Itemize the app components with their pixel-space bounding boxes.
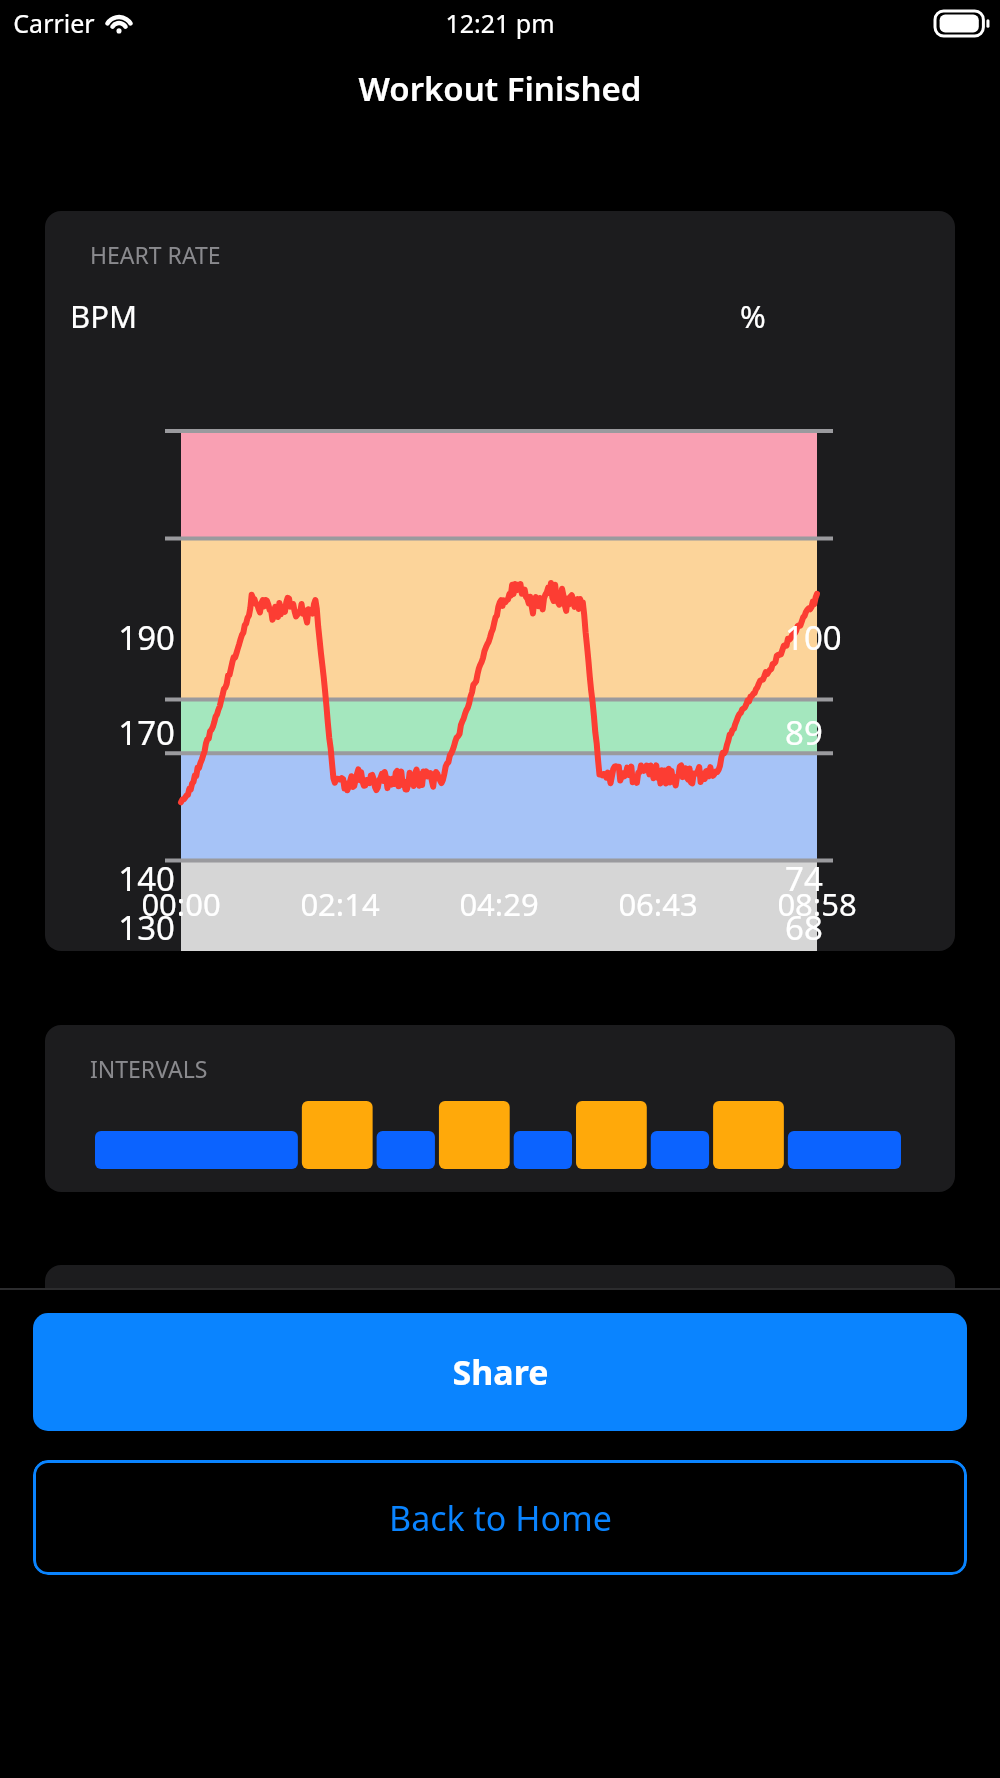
staticText: Carrier <box>13 6 95 40</box>
button[interactable]: Share <box>33 1313 967 1431</box>
staticText: BPM <box>70 295 138 337</box>
staticText: 100 <box>785 615 915 660</box>
staticText: 190 <box>45 615 175 660</box>
staticText: Share <box>452 1349 549 1395</box>
button[interactable]: Back to Home <box>33 1460 967 1575</box>
staticText: 140 <box>45 856 175 901</box>
staticText: 170 <box>45 710 175 755</box>
staticText: Workout Finished <box>358 66 642 111</box>
staticText: 74 <box>785 856 915 901</box>
staticText: HEART RATE <box>90 239 221 270</box>
staticText: INTERVALS <box>90 1053 208 1084</box>
staticText: 08:58 <box>742 883 892 925</box>
staticText: 68 <box>785 905 915 950</box>
staticText: 00:00 <box>106 883 256 925</box>
staticText: % <box>740 295 766 337</box>
staticText: Back to Home <box>389 1495 612 1541</box>
staticText: 06:43 <box>583 883 733 925</box>
staticText: 02:14 <box>265 883 415 925</box>
staticText: 12:21 pm <box>445 6 555 40</box>
staticText: 04:29 <box>424 883 574 925</box>
staticText: 89 <box>785 710 915 755</box>
staticText: 130 <box>45 905 175 950</box>
